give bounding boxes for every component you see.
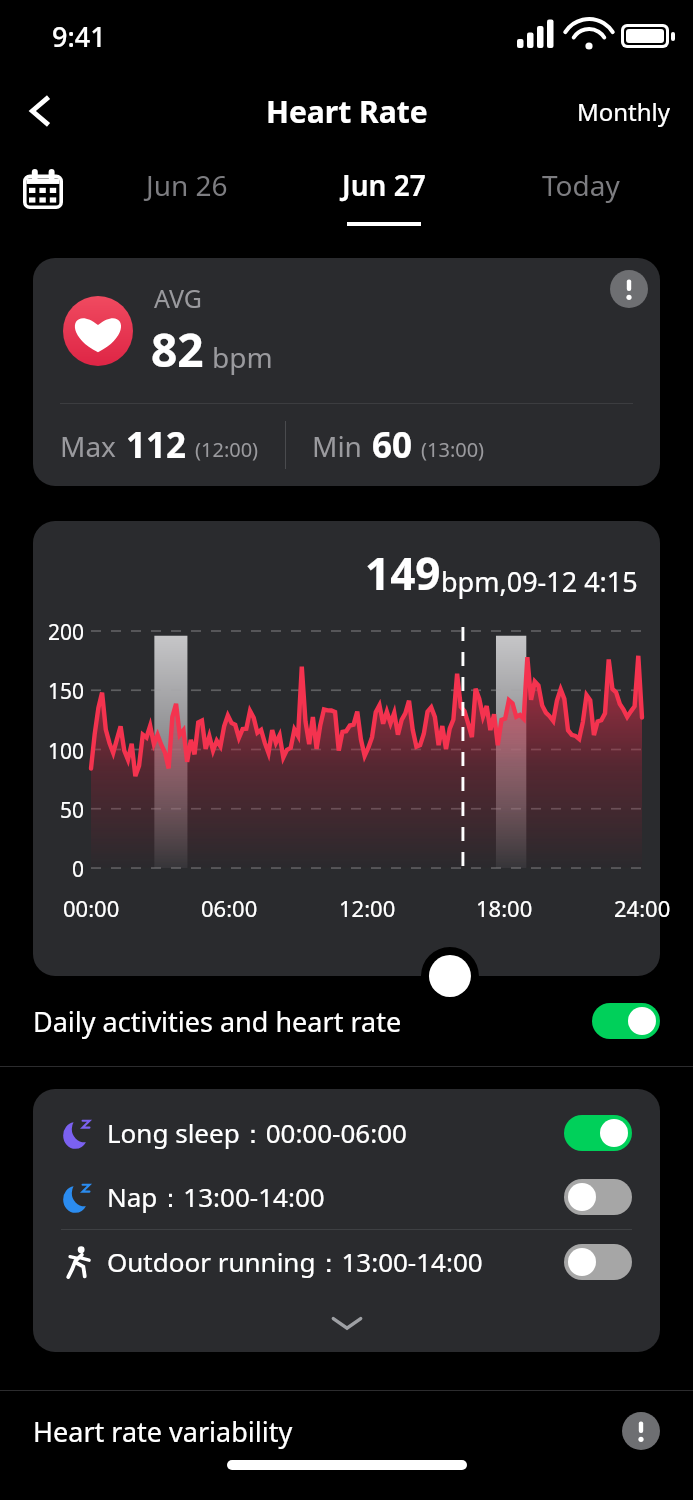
button[interactable]: Jun 27 [285, 150, 482, 238]
staticText: Daily activities and heart rate [33, 1003, 592, 1040]
staticText: 0 [72, 855, 85, 884]
staticText: bpm [212, 338, 273, 376]
staticText: 60 [372, 421, 413, 469]
staticText: 24:00 [614, 893, 671, 923]
staticText: Today [542, 166, 620, 204]
staticText: Monthly [577, 95, 671, 128]
other: Info [622, 1412, 660, 1450]
staticText: bpm,09-12 4:15 [441, 563, 638, 600]
staticText: (12:00) [195, 436, 259, 463]
staticText: 12:00 [339, 893, 396, 923]
button[interactable]: Back [12, 82, 70, 140]
staticText: (13:00) [421, 436, 485, 463]
button[interactable]: Calendar [18, 164, 68, 214]
staticText: Max [60, 427, 116, 465]
staticText: Min [312, 427, 362, 465]
staticText: 150 [48, 677, 85, 706]
staticText: 00:00 [63, 893, 120, 923]
button[interactable]: Jun 26 [88, 150, 285, 238]
staticText: Outdoor running：13:00-14:00 [107, 1244, 564, 1280]
staticText: 18:00 [476, 893, 533, 923]
staticText: 9:41 [52, 18, 106, 55]
button[interactable]: Outdoor running：13:00-14:00 [33, 1230, 660, 1294]
button[interactable]: Monthly [555, 85, 693, 138]
staticText: 200 [48, 618, 85, 647]
staticText: Nap：13:00-14:00 [107, 1179, 564, 1215]
staticText: 06:00 [201, 893, 258, 923]
other: Info [610, 270, 648, 308]
staticText: Long sleep：00:00-06:00 [107, 1115, 564, 1151]
button[interactable]: Nap：13:00-14:00 [33, 1165, 660, 1229]
button[interactable]: Heart rate variability [0, 1391, 693, 1471]
staticText: AVG [154, 281, 202, 315]
button[interactable]: Expand [33, 1294, 660, 1352]
button[interactable]: Long sleep：00:00-06:00 [33, 1101, 660, 1165]
staticText: Heart rate variability [33, 1413, 622, 1450]
button[interactable]: Info [33, 258, 660, 486]
button[interactable]: Today [482, 150, 679, 238]
staticText: Heart Rate [266, 91, 428, 132]
staticText: 50 [60, 796, 85, 825]
button[interactable]: Daily activities and heart rate [0, 976, 693, 1066]
staticText: 112 [126, 421, 187, 469]
staticText: Jun 26 [146, 166, 228, 204]
button[interactable] [33, 521, 660, 976]
staticText: 149 [365, 543, 441, 603]
staticText: 82 [151, 318, 204, 381]
staticText: 100 [48, 737, 85, 766]
staticText: Jun 27 [342, 166, 426, 204]
